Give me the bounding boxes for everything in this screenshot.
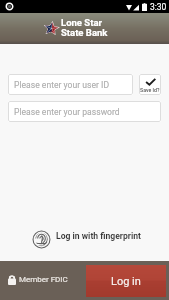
button[interactable]: Please enter your user ID <box>8 74 133 95</box>
staticText: Log in <box>111 275 141 288</box>
staticText: Log in with fingerprint <box>56 231 141 241</box>
button[interactable]: Log in with fingerprint <box>32 227 169 246</box>
staticText: 3:30 <box>150 2 167 12</box>
staticText: Lone Star <box>61 17 102 28</box>
staticText: State Bank <box>61 27 108 38</box>
staticText: Please enter your password <box>14 107 120 117</box>
button[interactable]: Log in <box>86 265 166 297</box>
staticText: Member FDIC <box>19 275 68 284</box>
button[interactable]: Member FDIC <box>8 274 68 285</box>
button[interactable]: Please enter your password <box>8 101 161 122</box>
staticText: Please enter your user ID <box>14 80 110 90</box>
button[interactable]: Save Id <box>139 74 161 95</box>
staticText: Save Id? <box>140 87 160 93</box>
